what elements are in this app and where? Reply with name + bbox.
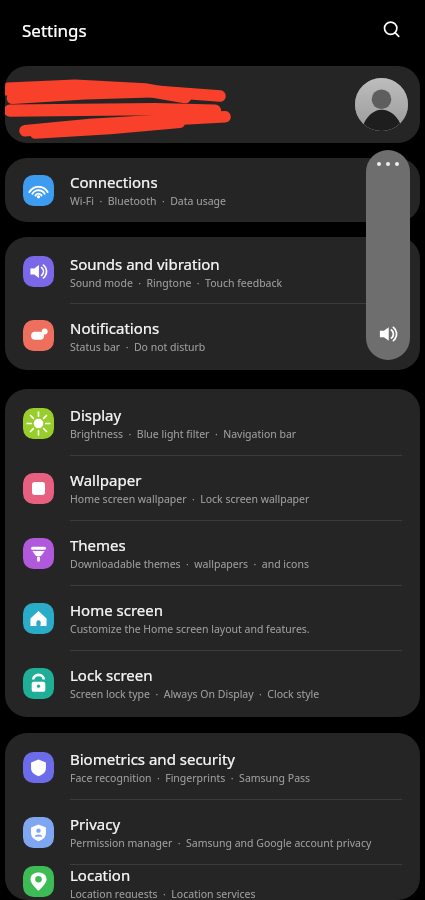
staticText: Themes bbox=[70, 535, 126, 555]
staticText: Home screen wallpaper · Lock screen wall… bbox=[70, 492, 310, 506]
button[interactable]: Themes bbox=[5, 521, 420, 585]
button[interactable]: Notifications bbox=[5, 304, 420, 367]
staticText: Face recognition · Fingerprints · Samsun… bbox=[70, 771, 311, 785]
staticText: Brightness · Blue light filter · Navigat… bbox=[70, 427, 297, 441]
staticText: Sounds and vibration bbox=[70, 254, 220, 274]
button[interactable]: Volume bbox=[366, 150, 410, 360]
staticText: Connections bbox=[70, 172, 158, 192]
staticText: Biometrics and security bbox=[70, 749, 236, 769]
button[interactable]: Wallpaper bbox=[5, 456, 420, 520]
button[interactable]: Display bbox=[5, 391, 420, 455]
button[interactable]: Sounds and vibration bbox=[5, 240, 420, 303]
staticText: Lock screen bbox=[70, 665, 153, 685]
staticText: Status bar · Do not disturb bbox=[70, 340, 206, 354]
button[interactable]: Privacy bbox=[5, 800, 420, 864]
button[interactable]: Location bbox=[5, 865, 420, 898]
staticText: Settings bbox=[22, 19, 87, 42]
button[interactable]: Connections bbox=[5, 161, 420, 219]
staticText: Home screen bbox=[70, 600, 164, 620]
button[interactable]: Home screen bbox=[5, 586, 420, 650]
staticText: Customize the Home screen layout and fea… bbox=[70, 622, 310, 636]
button[interactable]: More volume options bbox=[377, 162, 399, 166]
button[interactable]: Lock screen bbox=[5, 651, 420, 715]
staticText: Sound mode · Ringtone · Touch feedback bbox=[70, 276, 283, 290]
staticText: Downloadable themes · wallpapers · and i… bbox=[70, 557, 309, 571]
staticText: Wallpaper bbox=[70, 470, 142, 490]
staticText: Privacy bbox=[70, 814, 121, 834]
staticText: Screen lock type · Always On Display · C… bbox=[70, 687, 320, 701]
button[interactable]: Search bbox=[377, 15, 407, 45]
staticText: Display bbox=[70, 405, 122, 425]
staticText: Notifications bbox=[70, 318, 160, 338]
staticText: Wi-Fi · Bluetooth · Data usage bbox=[70, 194, 226, 208]
button[interactable]: Biometrics and security bbox=[5, 735, 420, 799]
button[interactable] bbox=[5, 66, 420, 143]
staticText: Permission manager · Samsung and Google … bbox=[70, 836, 372, 850]
staticText: Location requests · Location services bbox=[70, 887, 256, 898]
button[interactable]: Media volume bbox=[374, 320, 402, 348]
staticText: Location bbox=[70, 865, 131, 885]
